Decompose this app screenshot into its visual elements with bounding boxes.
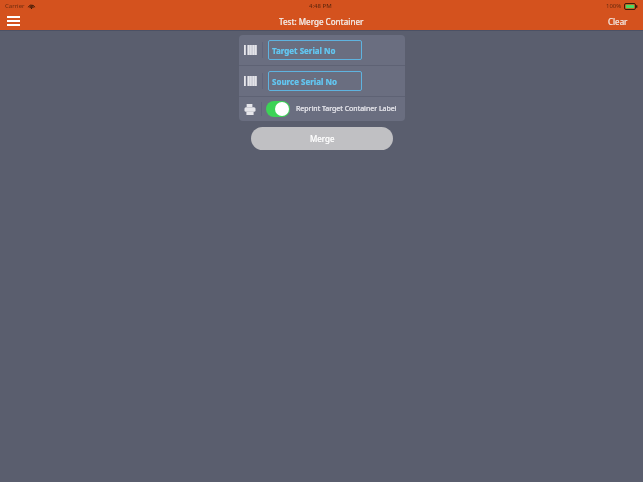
staticText: 100%	[606, 2, 622, 10]
button[interactable]: Target Serial No	[239, 35, 405, 65]
staticText: Reprint Target Container Label	[296, 104, 397, 114]
button[interactable]: Reprint target container label toggle	[266, 101, 290, 117]
button[interactable]: Clear	[592, 12, 643, 30]
button[interactable]: Menu	[0, 12, 26, 30]
button[interactable]: Reprint target container label toggle	[239, 97, 405, 121]
staticText: Clear	[608, 16, 628, 27]
button[interactable]: Merge	[251, 127, 393, 150]
staticText: 4:48 PM	[309, 2, 332, 10]
staticText: Source Serial No	[272, 76, 337, 87]
staticText: Carrier	[5, 2, 25, 10]
staticText: Test: Merge Container	[279, 16, 364, 27]
staticText: Target Serial No	[272, 45, 336, 56]
staticText: Merge	[310, 133, 335, 144]
button[interactable]: Source Serial No	[239, 66, 405, 96]
